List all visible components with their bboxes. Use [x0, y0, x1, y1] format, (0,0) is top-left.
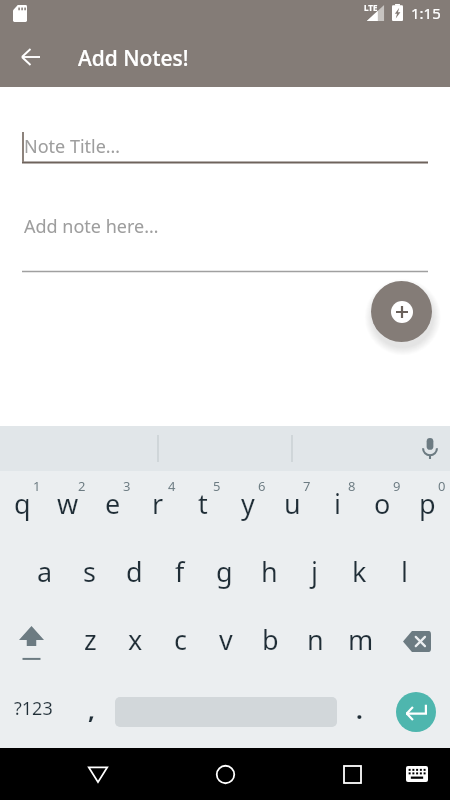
staticText: a: [37, 553, 53, 590]
button[interactable]: Voice input: [410, 426, 450, 471]
staticText: 3: [123, 477, 131, 495]
staticText: u: [284, 485, 301, 522]
staticText: Add Notes!: [78, 44, 189, 73]
staticText: r: [152, 485, 164, 522]
button[interactable]: 1: [0, 471, 45, 539]
staticText: 8: [348, 477, 356, 495]
staticText: h: [261, 553, 278, 590]
button[interactable]: ?123: [0, 675, 67, 748]
button[interactable]: Shift: [0, 607, 67, 675]
staticText: Add note here…: [24, 214, 159, 239]
button[interactable]: 9: [360, 471, 405, 539]
staticText: 1:15: [411, 3, 441, 23]
button[interactable]: 6: [225, 471, 270, 539]
button[interactable]: m: [338, 607, 383, 675]
button[interactable]: Home: [195, 748, 255, 800]
staticText: e: [105, 485, 121, 522]
staticText: i: [334, 485, 341, 522]
button[interactable]: b: [248, 607, 293, 675]
button[interactable]: 7: [270, 471, 315, 539]
staticText: k: [352, 553, 367, 590]
staticText: g: [216, 553, 233, 590]
staticText: y: [241, 485, 255, 522]
button[interactable]: 3: [90, 471, 135, 539]
button[interactable]: Recent apps: [322, 748, 382, 800]
button[interactable]: Switch keyboard: [389, 748, 445, 800]
staticText: n: [307, 621, 324, 658]
staticText: .: [356, 693, 363, 726]
button[interactable]: h: [247, 539, 292, 607]
staticText: t: [198, 485, 208, 522]
button[interactable]: c: [158, 607, 203, 675]
button[interactable]: a: [23, 539, 67, 607]
staticText: d: [126, 553, 143, 590]
staticText: Note Title…: [24, 134, 121, 159]
staticText: 9: [393, 477, 401, 495]
button[interactable]: s: [67, 539, 112, 607]
staticText: m: [348, 621, 374, 658]
button[interactable]: Navigate up: [8, 25, 450, 87]
button[interactable]: 0: [405, 471, 450, 539]
button[interactable]: Backspace: [383, 607, 450, 675]
staticText: x: [128, 621, 143, 658]
button[interactable]: f: [157, 539, 202, 607]
staticText: o: [374, 485, 391, 522]
staticText: ,: [88, 693, 95, 726]
button[interactable]: n: [293, 607, 338, 675]
staticText: 6: [258, 477, 266, 495]
button[interactable]: ,: [67, 675, 115, 748]
button[interactable]: Add note: [371, 281, 432, 342]
button[interactable]: j: [292, 539, 337, 607]
button[interactable]: 5: [180, 471, 225, 539]
staticText: f: [175, 553, 185, 590]
staticText: 7: [303, 477, 311, 495]
button[interactable]: [115, 675, 337, 748]
button[interactable]: d: [112, 539, 157, 607]
button[interactable]: x: [113, 607, 158, 675]
staticText: 5: [213, 477, 221, 495]
staticText: j: [311, 553, 318, 590]
staticText: 1: [33, 477, 41, 495]
button[interactable]: 2: [45, 471, 90, 539]
button[interactable]: z: [67, 607, 113, 675]
staticText: q: [14, 485, 31, 522]
staticText: 0: [438, 477, 446, 495]
staticText: p: [419, 485, 436, 522]
staticText: ?123: [14, 696, 53, 721]
staticText: c: [174, 621, 187, 658]
button[interactable]: l: [382, 539, 427, 607]
staticText: s: [83, 553, 96, 590]
staticText: w: [57, 485, 79, 522]
staticText: v: [219, 621, 233, 658]
button[interactable]: v: [203, 607, 248, 675]
button[interactable]: Enter: [396, 692, 436, 732]
button[interactable]: .: [337, 675, 382, 748]
button[interactable]: Back: [68, 748, 128, 800]
button[interactable]: 8: [315, 471, 360, 539]
staticText: b: [262, 621, 279, 658]
staticText: 4: [168, 477, 176, 495]
staticText: LTE: [364, 2, 378, 13]
staticText: z: [84, 621, 97, 658]
button[interactable]: 4: [135, 471, 180, 539]
staticText: 2: [78, 477, 86, 495]
button[interactable]: g: [202, 539, 247, 607]
staticText: l: [401, 553, 408, 590]
button[interactable]: k: [337, 539, 382, 607]
